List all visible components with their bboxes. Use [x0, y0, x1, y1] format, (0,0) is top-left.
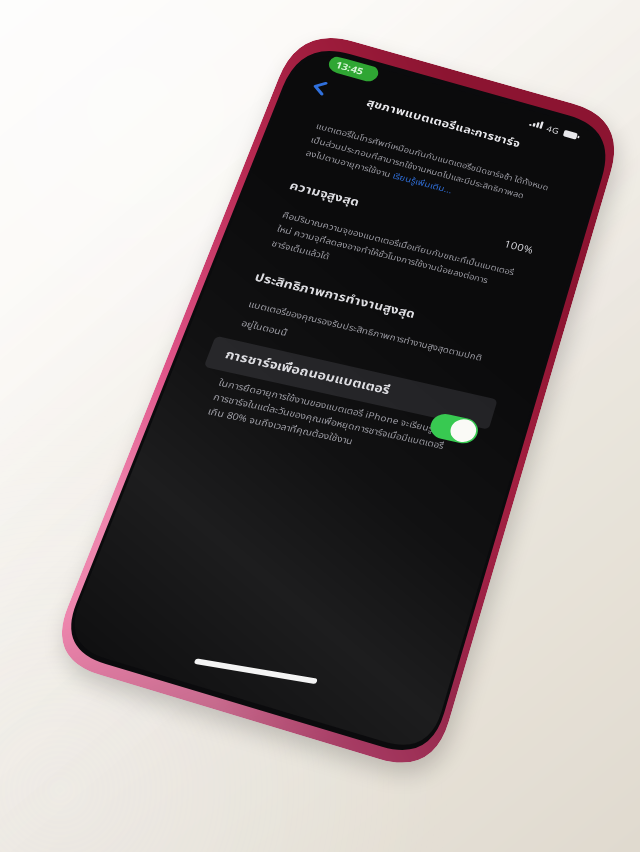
button[interactable]: Photo of a red iPhone showing Battery He… [0, 0, 640, 852]
